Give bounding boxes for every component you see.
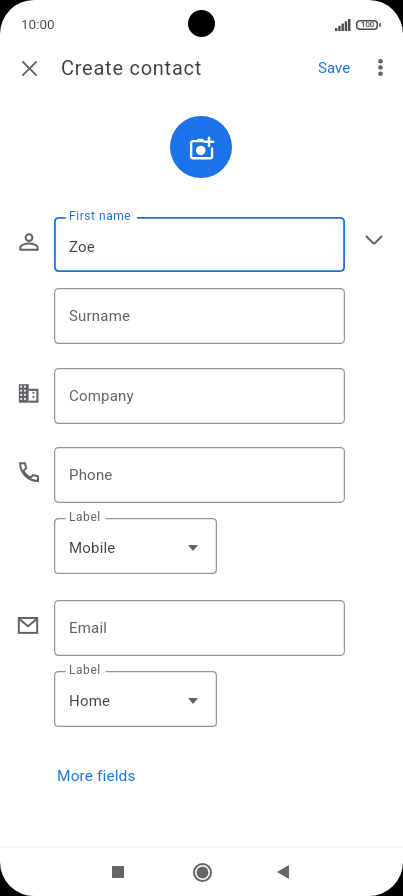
button[interactable]: Home [180, 850, 224, 894]
button[interactable]: Phone [54, 447, 345, 503]
button[interactable]: Company [54, 368, 345, 424]
button[interactable]: Recent apps [96, 850, 140, 894]
button[interactable]: Save [308, 51, 361, 85]
staticText: First name [69, 209, 132, 223]
button[interactable]: First name [54, 217, 345, 272]
button[interactable]: Label [54, 518, 217, 574]
staticText: Label [69, 510, 101, 524]
staticText: Save [318, 59, 351, 77]
staticText: Label [69, 663, 101, 677]
staticText: Zoe [69, 238, 95, 256]
staticText: 10:00 [21, 16, 55, 32]
staticText: Surname [69, 307, 131, 325]
staticText: More fields [57, 767, 136, 785]
staticText: Email [69, 619, 108, 637]
staticText: Phone [69, 466, 113, 484]
button[interactable]: Surname [54, 288, 345, 344]
button[interactable]: Close [8, 47, 50, 89]
staticText: 100 [361, 20, 375, 29]
staticText: Company [69, 387, 134, 405]
button[interactable]: Add photo [170, 116, 232, 178]
button[interactable]: Label [54, 671, 217, 727]
button[interactable]: Email [54, 600, 345, 656]
staticText: Create contact [61, 56, 203, 79]
staticText: Home [69, 692, 111, 710]
staticText: Mobile [69, 539, 116, 557]
button[interactable]: More options [359, 46, 401, 88]
button[interactable]: More fields [47, 761, 146, 791]
button[interactable]: Expand name fields [354, 220, 394, 260]
button[interactable]: Back [261, 850, 305, 894]
